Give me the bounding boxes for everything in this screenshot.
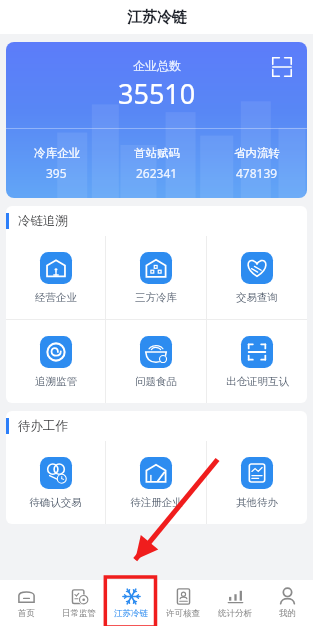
button[interactable]: 日常监管	[53, 580, 105, 626]
staticText: 三方冷库	[135, 291, 177, 304]
button[interactable]: 企业总数	[6, 42, 307, 198]
button[interactable]: 待确认交易	[6, 441, 105, 524]
button[interactable]: 冷库企业	[6, 129, 107, 198]
button[interactable]: 我的	[261, 580, 313, 626]
staticText: 江苏冷链	[114, 608, 148, 619]
staticText: 478139	[236, 165, 278, 181]
staticText: 262341	[136, 165, 178, 181]
staticText: 出仓证明互认	[226, 375, 289, 388]
button[interactable]: 问题食品	[106, 320, 206, 403]
button[interactable]: 其他待办	[207, 441, 307, 524]
button[interactable]: 待注册企业	[106, 441, 206, 524]
staticText: 交易查询	[236, 291, 278, 304]
button[interactable]: 统计分析	[209, 580, 261, 626]
staticText: 省内流转	[234, 146, 280, 160]
staticText: 首页	[18, 608, 35, 619]
staticText: 其他待办	[236, 496, 278, 509]
staticText: 问题食品	[135, 375, 177, 388]
button[interactable]: 经营企业	[6, 236, 105, 319]
button[interactable]: 许可核查	[157, 580, 209, 626]
staticText: 首站赋码	[134, 146, 180, 160]
staticText: 追溯监管	[35, 375, 77, 388]
button[interactable]: 交易查询	[207, 236, 307, 319]
staticText: 待确认交易	[29, 496, 82, 509]
staticText: 日常监管	[62, 608, 96, 619]
button[interactable]: 三方冷库	[106, 236, 206, 319]
staticText: 冷库企业	[34, 146, 80, 160]
button[interactable]: 扫一扫	[271, 56, 293, 78]
button[interactable]: 首页	[0, 580, 53, 626]
staticText: 35510	[118, 75, 196, 112]
staticText: 冷链追溯	[18, 213, 68, 229]
staticText: 江苏冷链	[127, 8, 187, 27]
staticText: 395	[46, 165, 67, 181]
button[interactable]: 追溯监管	[6, 320, 105, 403]
staticText: 待办工作	[18, 418, 68, 434]
staticText: 待注册企业	[130, 496, 183, 509]
staticText: 企业总数	[133, 58, 181, 73]
staticText: 许可核查	[166, 608, 200, 619]
button[interactable]: 首站赋码	[107, 129, 207, 198]
button[interactable]: 省内流转	[207, 129, 307, 198]
button[interactable]: 江苏冷链	[105, 580, 157, 626]
button[interactable]: 出仓证明互认	[207, 320, 307, 403]
staticText: 经营企业	[35, 291, 77, 304]
staticText: 统计分析	[218, 608, 252, 619]
staticText: 我的	[279, 608, 296, 619]
